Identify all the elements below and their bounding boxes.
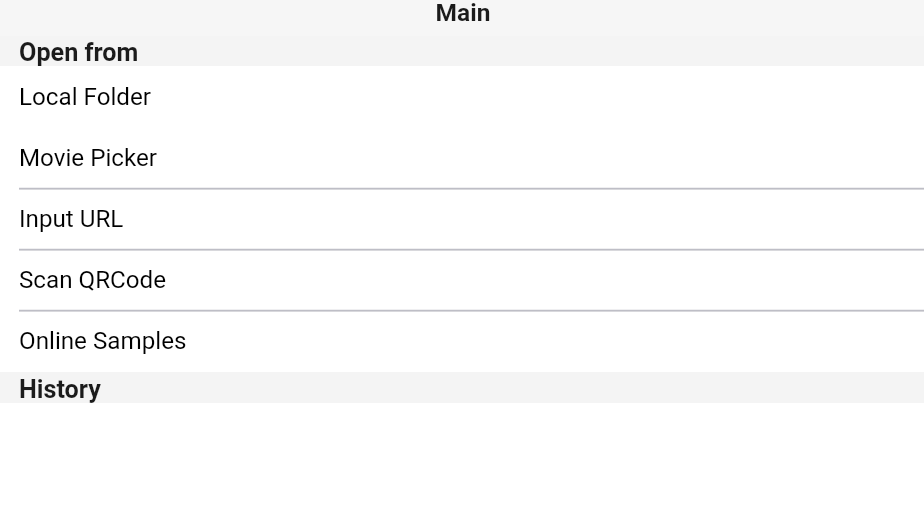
staticText: Open from <box>19 38 139 68</box>
staticText: Movie Picker <box>19 144 158 172</box>
button[interactable]: Local Folder <box>0 66 924 127</box>
staticText: Input URL <box>19 205 124 233</box>
button[interactable]: Input URL <box>0 188 924 249</box>
button[interactable]: Movie Picker <box>0 127 924 188</box>
button[interactable]: Scan QRCode <box>0 249 924 310</box>
staticText: Local Folder <box>19 83 151 111</box>
staticText: Main <box>1 0 924 27</box>
staticText: Online Samples <box>19 327 187 355</box>
button[interactable]: Online Samples <box>0 310 924 372</box>
staticText: Scan QRCode <box>19 266 167 294</box>
staticText: History <box>19 375 101 403</box>
